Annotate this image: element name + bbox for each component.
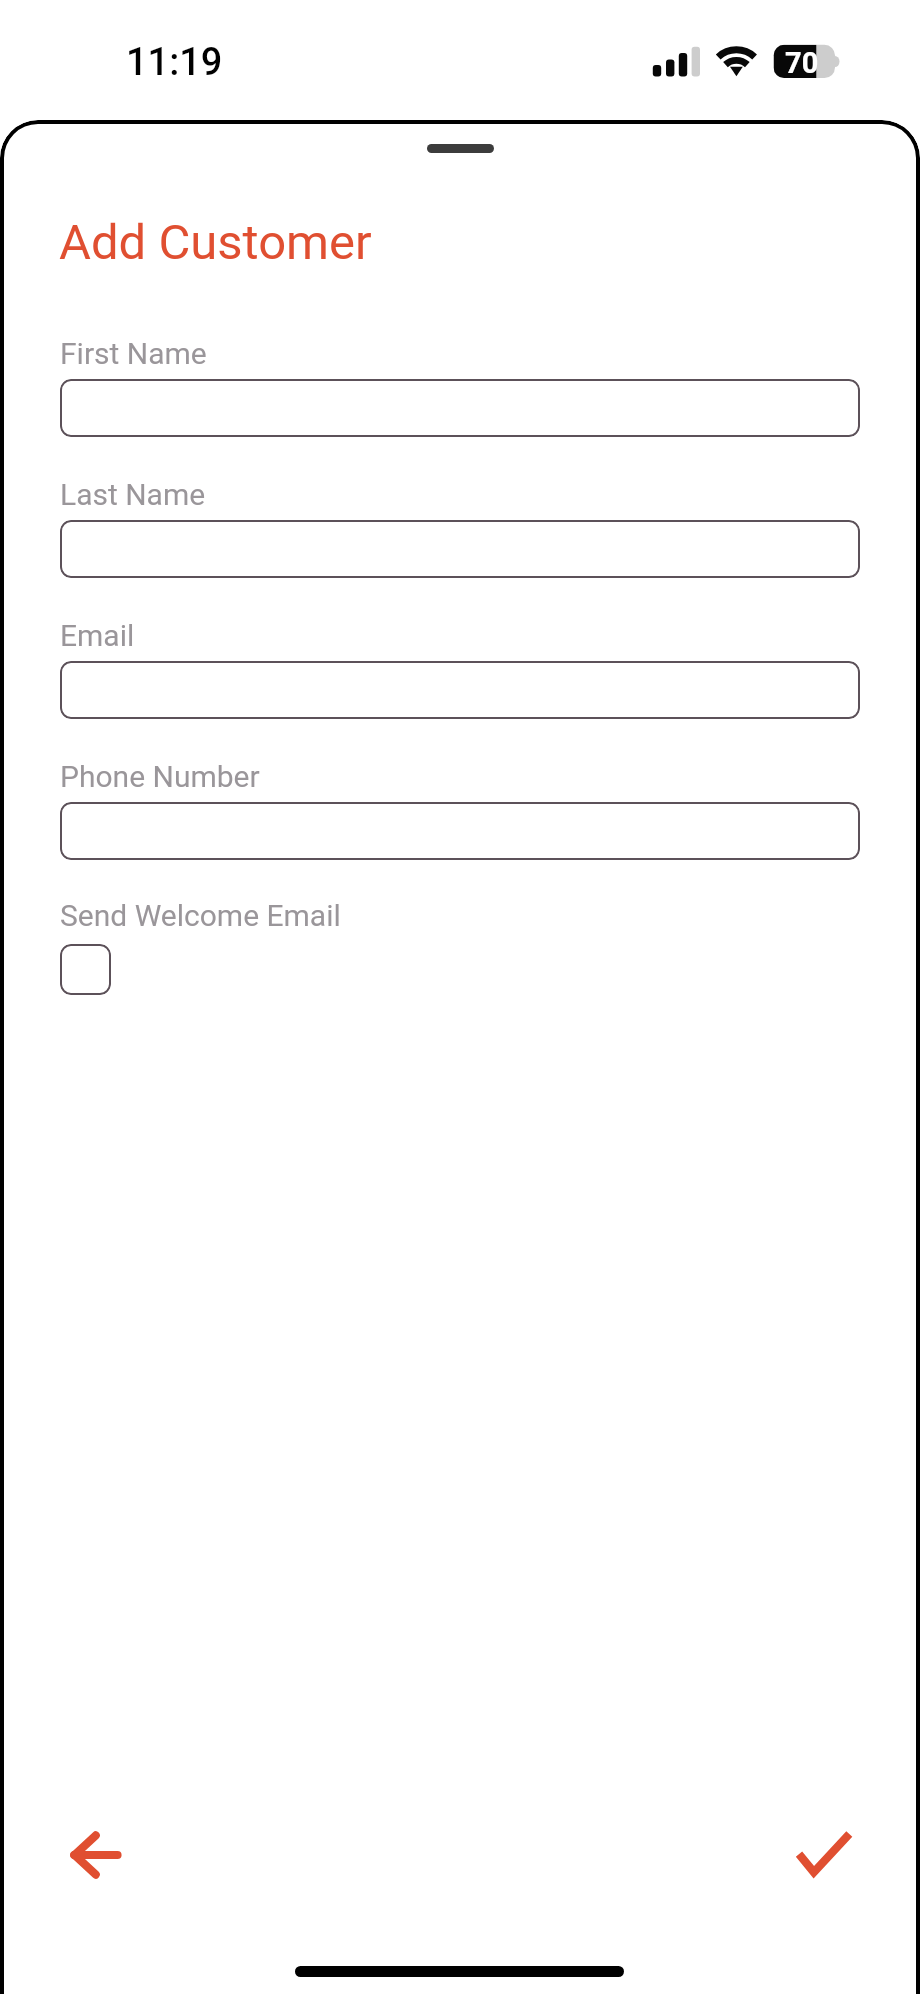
staticText: 70	[785, 46, 819, 80]
button[interactable]: Last Name	[60, 520, 860, 578]
button[interactable]: Send Welcome Email	[60, 944, 111, 995]
button[interactable]: Save	[779, 1823, 871, 1891]
button[interactable]: Email	[60, 661, 860, 719]
staticText: Add Customer	[59, 214, 372, 271]
staticText: Email	[60, 618, 135, 653]
button[interactable]: Back	[50, 1821, 142, 1889]
button[interactable]: First Name	[60, 379, 860, 437]
staticText: Phone Number	[60, 759, 260, 794]
staticText: Last Name	[60, 477, 206, 512]
staticText: 11:19	[126, 40, 223, 85]
staticText: Send Welcome Email	[60, 898, 341, 933]
staticText: First Name	[60, 336, 207, 371]
button[interactable]: Phone Number	[60, 802, 860, 860]
